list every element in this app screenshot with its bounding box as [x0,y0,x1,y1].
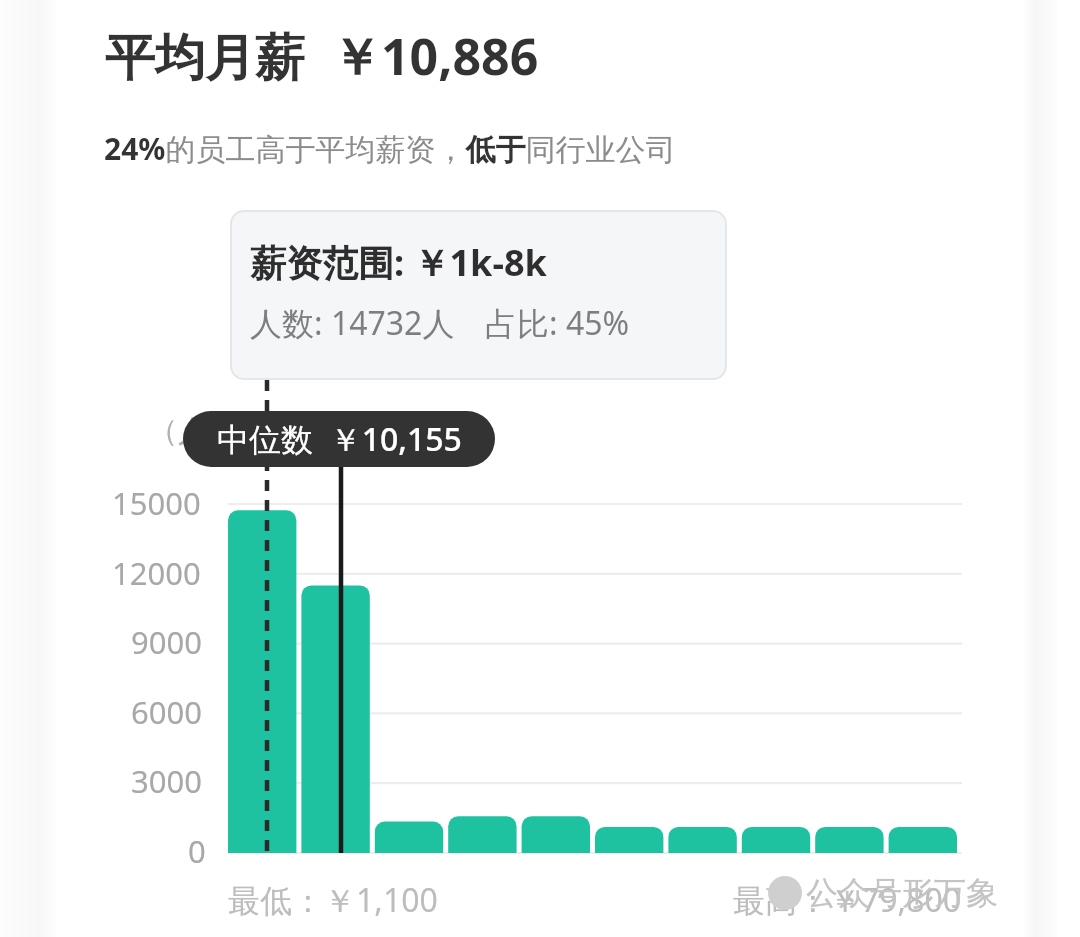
button[interactable]: 薪资范围: ￥1k-8k [230,210,727,380]
staticText: （人数） [148,412,268,450]
staticText: 3000 [131,760,202,802]
staticText: 0 [188,830,206,872]
staticText: 最低：￥1,100 [228,878,438,922]
staticText: 中位数 ￥10,155 [217,417,462,461]
staticText: 15000 [112,482,201,524]
staticText: 平均月薪 ￥10,886 [105,22,539,90]
staticText: 12000 [112,552,201,594]
staticText: 薪资范围: ￥1k-8k [250,238,547,287]
staticText: 24%的员工高于平均薪资，低于同行业公司 [104,128,676,169]
button[interactable]: 中位数 ￥10,155 [183,411,495,467]
staticText: 6000 [131,691,202,733]
staticText: 公众号形万象 [806,873,998,913]
staticText: 占比: 45% [485,301,630,345]
staticText: 人数: 14732人 [250,301,455,345]
staticText: 最高：￥79,800 [733,878,962,922]
staticText: 9000 [131,621,202,663]
